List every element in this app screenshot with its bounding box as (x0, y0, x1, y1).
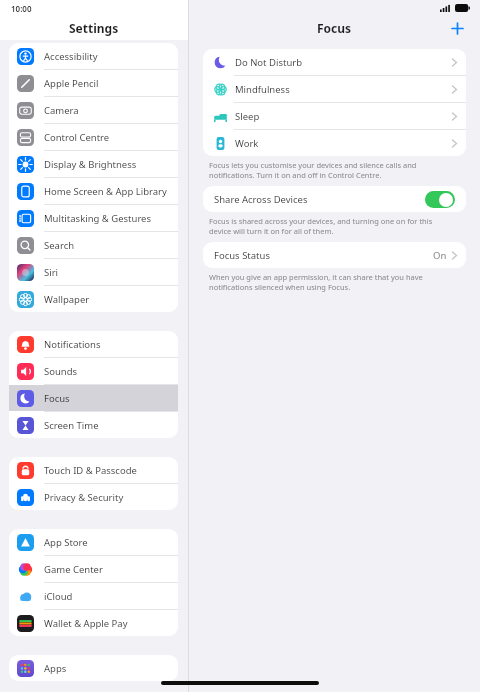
button[interactable]: Focus Status (203, 242, 466, 268)
staticText: Focus (317, 20, 352, 36)
staticText: Siri (44, 266, 59, 279)
staticText: Settings (69, 20, 119, 36)
staticText: Do Not Disturb (235, 56, 303, 69)
staticText: Display & Brightness (44, 158, 137, 171)
button[interactable]: Share Across Devices (203, 186, 466, 212)
staticText: iCloud (44, 590, 73, 603)
staticText: Privacy & Security (44, 491, 124, 504)
button[interactable]: Focus (9, 385, 178, 411)
staticText: Sleep (235, 110, 260, 123)
button[interactable]: Control Centre (9, 124, 178, 150)
staticText: Touch ID & Passcode (44, 464, 137, 477)
button[interactable]: iCloud (9, 583, 178, 609)
staticText: Screen Time (44, 419, 99, 432)
staticText: Game Center (44, 563, 103, 576)
button[interactable]: Do Not Disturb (203, 49, 466, 75)
button[interactable]: Accessibility (9, 43, 178, 69)
staticText: Notifications (44, 338, 101, 351)
button[interactable]: Notifications (9, 331, 178, 357)
staticText: When you give an app permission, it can … (209, 272, 454, 292)
button[interactable]: Privacy & Security (9, 484, 178, 510)
staticText: Focus lets you customise your devices an… (209, 160, 454, 180)
button[interactable]: Home Screen & App Library (9, 178, 178, 204)
staticText: Focus is shared across your devices, and… (209, 216, 454, 236)
button[interactable]: Mindfulness (203, 76, 466, 102)
button[interactable]: Wallpaper (9, 286, 178, 312)
button[interactable]: Game Center (9, 556, 178, 582)
staticText: Focus Status (214, 249, 270, 262)
button[interactable]: Apple Pencil (9, 70, 178, 96)
button[interactable]: Add Focus (446, 17, 468, 39)
staticText: Accessibility (44, 50, 98, 63)
button[interactable]: Search (9, 232, 178, 258)
button[interactable]: Siri (9, 259, 178, 285)
staticText: Search (44, 239, 75, 252)
staticText: 10:00 (11, 3, 32, 14)
button[interactable]: Sleep (203, 103, 466, 129)
staticText: Wallet & Apple Pay (44, 617, 128, 630)
staticText: Control Centre (44, 131, 110, 144)
button[interactable]: Work (203, 130, 466, 156)
staticText: Focus (44, 392, 70, 405)
button[interactable]: Display & Brightness (9, 151, 178, 177)
staticText: Home Screen & App Library (44, 185, 167, 198)
button[interactable]: Apps (9, 655, 178, 681)
staticText: Apps (44, 662, 67, 675)
staticText: Share Across Devices (214, 193, 308, 206)
staticText: On (433, 249, 447, 262)
button[interactable]: Screen Time (9, 412, 178, 438)
staticText: Wallpaper (44, 293, 90, 306)
button[interactable]: Wallet & Apple Pay (9, 610, 178, 636)
button[interactable]: Touch ID & Passcode (9, 457, 178, 483)
button[interactable]: Camera (9, 97, 178, 123)
staticText: Multitasking & Gestures (44, 212, 152, 225)
staticText: Work (235, 137, 259, 150)
staticText: App Store (44, 536, 88, 549)
staticText: Sounds (44, 365, 78, 378)
staticText: Camera (44, 104, 79, 117)
button[interactable]: Multitasking & Gestures (9, 205, 178, 231)
staticText: Apple Pencil (44, 77, 99, 90)
staticText: Mindfulness (235, 83, 290, 96)
button[interactable]: Sounds (9, 358, 178, 384)
button[interactable]: App Store (9, 529, 178, 555)
